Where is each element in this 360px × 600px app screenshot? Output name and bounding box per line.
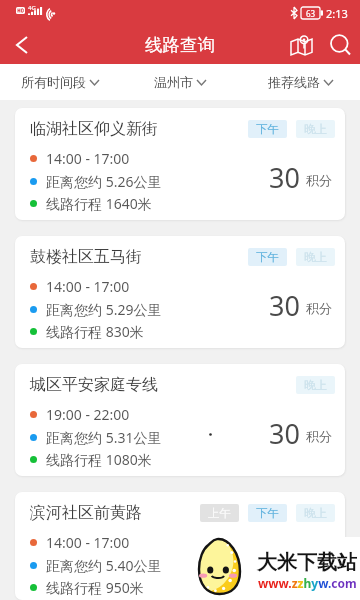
staticText: 14:00 - 17:00 [46, 277, 130, 296]
staticText: 城区平安家庭专线 [30, 375, 158, 395]
staticText: 线路行程 830米 [46, 322, 144, 341]
staticText: 线路查询 [145, 34, 215, 56]
staticText: 积分 [306, 556, 332, 572]
staticText: 线路行程 950米 [46, 578, 144, 597]
staticText: 30 [269, 415, 300, 452]
staticText: 线路行程 1640米 [46, 194, 152, 213]
staticText: 4G [28, 4, 36, 12]
staticText: 下午 [256, 122, 279, 136]
staticText: 线路行程 1080米 [46, 450, 152, 469]
staticText: 下午 [256, 250, 279, 264]
staticText: 晚上 [304, 122, 327, 136]
staticText: 上午 [208, 506, 231, 520]
staticText: 温州市 [154, 74, 193, 90]
staticText: 63 [306, 8, 316, 19]
staticText: 30 [269, 543, 300, 580]
button[interactable]: Search [321, 26, 359, 64]
button[interactable]: 鼓楼社区五马街 [15, 236, 345, 348]
button[interactable]: 城区平安家庭专线 [15, 364, 345, 476]
staticText: 距离您约 5.29公里 [46, 300, 162, 319]
staticText: 临湖社区仰义新街 [30, 119, 158, 139]
button[interactable]: 温州市 [120, 64, 240, 100]
staticText: 距离您约 5.31公里 [46, 428, 162, 447]
staticText: 30 [269, 159, 300, 196]
button[interactable]: Map [282, 26, 320, 64]
staticText: 晚上 [304, 250, 327, 264]
staticText: 晚上 [304, 378, 327, 392]
staticText: 大米下载站 [257, 550, 357, 575]
staticText: 所有时间段 [21, 74, 86, 90]
staticText: 距离您约 5.40公里 [46, 556, 162, 575]
staticText: 下午 [256, 506, 279, 520]
staticText: 14:00 - 17:00 [46, 149, 130, 168]
staticText: 晚上 [304, 506, 327, 520]
staticText: 鼓楼社区五马街 [30, 247, 142, 267]
staticText: 积分 [306, 172, 332, 188]
button[interactable]: 滨河社区前黄路 [15, 492, 345, 600]
button[interactable]: Back [0, 26, 44, 64]
staticText: 积分 [306, 300, 332, 316]
staticText: 30 [269, 287, 300, 324]
staticText: 2:13 [326, 6, 348, 21]
button[interactable]: 推荐线路 [240, 64, 360, 100]
staticText: 19:00 - 22:00 [46, 405, 130, 424]
staticText: 距离您约 5.26公里 [46, 172, 162, 191]
button[interactable]: 所有时间段 [0, 64, 120, 100]
staticText: 滨河社区前黄路 [30, 503, 142, 523]
staticText: 14:00 - 17:00 [46, 533, 130, 552]
button[interactable]: 临湖社区仰义新街 [15, 108, 345, 220]
staticText: 推荐线路 [268, 74, 320, 90]
staticText: www.zzhyw.com [258, 575, 357, 591]
staticText: 积分 [306, 428, 332, 444]
